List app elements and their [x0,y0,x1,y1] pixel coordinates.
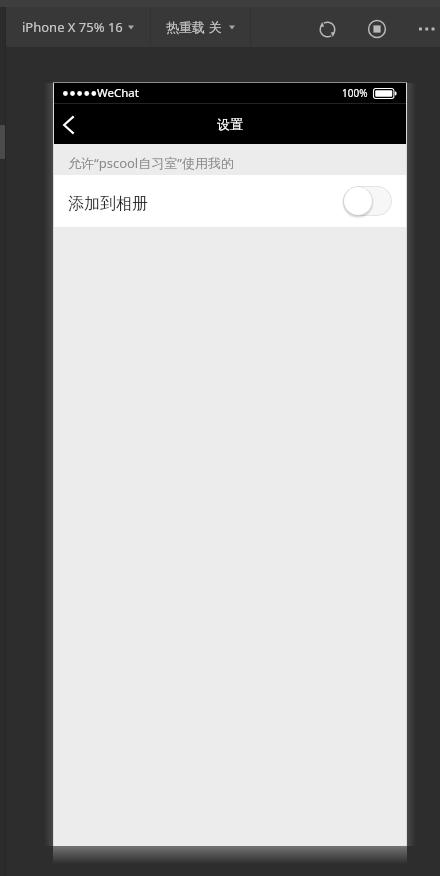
staticText: 允许“pscool自习室”使用我的 [68,154,234,172]
staticText: iPhone X 75% 16 [22,18,123,36]
button[interactable]: More options [408,8,440,46]
button[interactable]: iPhone X 75% 16 [7,7,150,47]
staticText: 100% [342,86,368,100]
button[interactable]: 添加到相册 toggle [343,186,392,216]
staticText: 添加到相册 [68,194,148,214]
button[interactable]: 添加到相册 [54,175,406,227]
staticText: 设置 [217,116,243,132]
staticText: 热重载 关 [166,18,222,36]
button[interactable]: Refresh [308,8,346,46]
button[interactable]: 热重载 关 [151,7,250,47]
staticText: WeChat [97,85,139,101]
button[interactable]: Back [54,104,83,144]
button[interactable]: Stop [358,8,396,46]
